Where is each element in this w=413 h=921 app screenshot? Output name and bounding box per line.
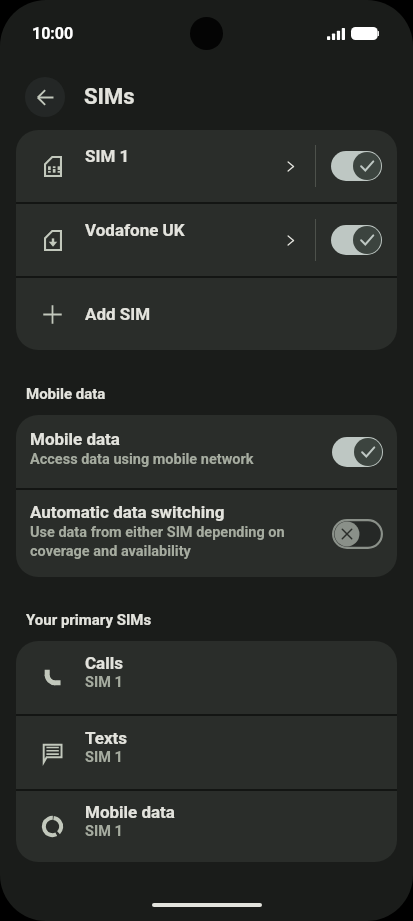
staticText: SIM 1 bbox=[85, 749, 123, 766]
button[interactable]: Calls bbox=[16, 641, 397, 714]
staticText: Vodafone UK bbox=[85, 220, 185, 240]
staticText: Mobile data bbox=[30, 429, 120, 449]
button[interactable]: Vodafone UK bbox=[16, 204, 315, 276]
staticText: 10:00 bbox=[32, 24, 74, 43]
staticText: Mobile data bbox=[85, 802, 175, 822]
staticText: Automatic data switching bbox=[30, 502, 225, 522]
staticText: SIM 1 bbox=[85, 823, 123, 840]
button[interactable] bbox=[316, 130, 396, 202]
staticText: Your primary SIMs bbox=[26, 611, 152, 629]
button[interactable]: Mobile data bbox=[16, 415, 397, 488]
staticText: Calls bbox=[85, 653, 123, 673]
button[interactable]: SIM 1 bbox=[16, 130, 315, 202]
button[interactable]: Texts bbox=[16, 716, 397, 789]
staticText: Mobile data bbox=[26, 385, 106, 403]
button[interactable]: Automatic data switching bbox=[16, 490, 397, 577]
button[interactable]: Back bbox=[25, 77, 65, 117]
staticText: Texts bbox=[85, 728, 128, 748]
button[interactable] bbox=[316, 204, 396, 276]
staticText: Access data using mobile network bbox=[30, 451, 254, 468]
button[interactable]: Mobile data bbox=[16, 791, 397, 862]
staticText: SIMs bbox=[84, 84, 135, 110]
staticText: SIM 1 bbox=[85, 674, 123, 691]
staticText: SIM 1 bbox=[85, 146, 130, 166]
staticText: Use data from either SIM depending on co… bbox=[30, 524, 322, 560]
staticText: Add SIM bbox=[85, 304, 151, 324]
button[interactable]: Add SIM bbox=[16, 278, 397, 350]
